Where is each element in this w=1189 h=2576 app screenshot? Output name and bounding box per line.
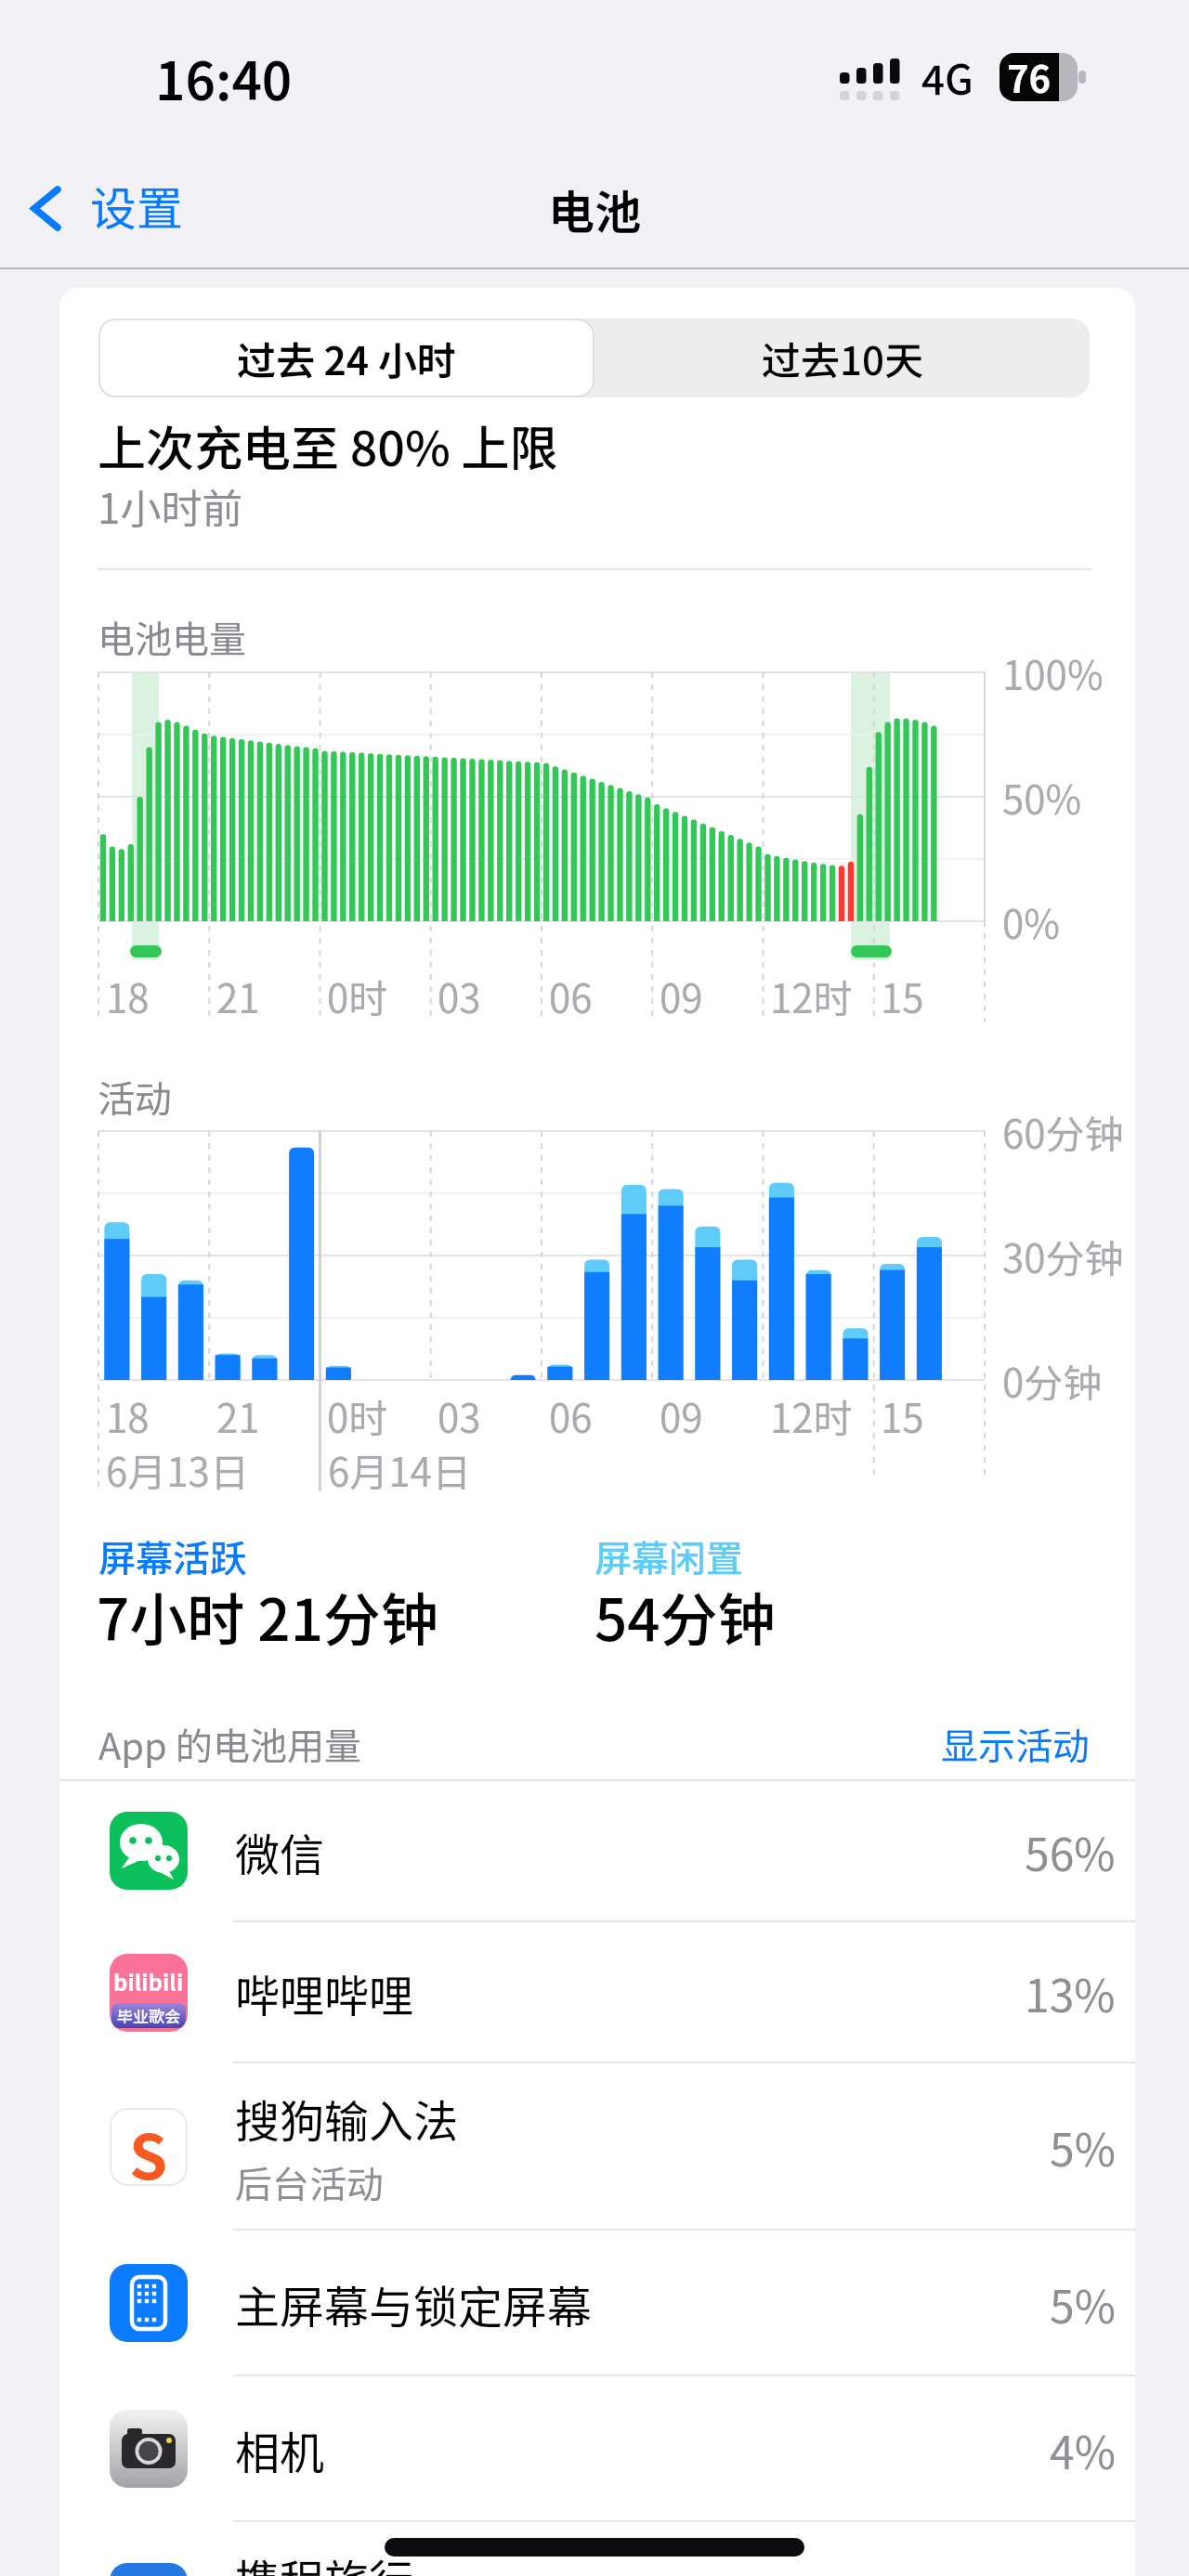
staticText: 13% (1025, 1960, 1116, 2025)
staticText: 03 (438, 1387, 481, 1444)
staticText: 搜狗输入法 (235, 2086, 459, 2149)
staticText: 0时 (327, 968, 388, 1024)
staticText: 4% (1050, 2417, 1116, 2482)
staticText: 携程旅行 (235, 2545, 414, 2576)
staticText: 76 (1007, 50, 1052, 104)
staticText: 过去10天 (762, 330, 923, 386)
button[interactable]: 过去 24 小时 (98, 319, 594, 397)
staticText: 16:40 (155, 40, 293, 115)
staticText: 100% (1002, 644, 1104, 701)
staticText: 06 (549, 1387, 593, 1444)
staticText: 12时 (770, 1387, 853, 1444)
staticText: S (129, 2108, 168, 2186)
staticText: 15 (881, 968, 924, 1024)
staticText: 设置 (90, 172, 183, 237)
staticText: 06 (549, 968, 593, 1024)
staticText: 上次充电至 80% 上限 (98, 410, 558, 480)
staticText: 03 (438, 968, 481, 1024)
staticText: App 的电池用量 (98, 1717, 361, 1771)
staticText: 0分钟 (1002, 1352, 1103, 1409)
button[interactable]: 主屏幕与锁定屏幕 (59, 2231, 1135, 2376)
staticText: 屏幕活跃 (98, 1529, 247, 1583)
staticText: 0% (1002, 893, 1060, 950)
staticText: 56% (1025, 1819, 1116, 1884)
staticText: 1小时前 (98, 476, 243, 536)
staticText: 屏幕闲置 (594, 1529, 743, 1583)
staticText: 18 (106, 1387, 150, 1444)
staticText: 毕业歌会 (117, 2004, 180, 2027)
staticText: 哔哩哔哩 (235, 1960, 414, 2025)
staticText: 30分钟 (1002, 1228, 1124, 1284)
staticText: 18 (106, 968, 150, 1024)
staticText: 12时 (770, 968, 853, 1024)
staticText: 显示活动 (941, 1717, 1090, 1771)
staticText: 5% (1050, 2271, 1116, 2336)
button[interactable]: 携程旅行 (59, 2522, 1135, 2576)
staticText: bilibili (113, 1965, 184, 1997)
staticText: 主屏幕与锁定屏幕 (235, 2271, 593, 2336)
staticText: 5% (1050, 2114, 1116, 2179)
staticText: 21 (216, 968, 260, 1024)
button[interactable]: bilibili (59, 1922, 1135, 2063)
button[interactable]: 微信 (59, 1780, 1135, 1922)
staticText: 7小时 21分钟 (97, 1574, 438, 1658)
button[interactable]: 相机 (59, 2376, 1135, 2522)
staticText: 电池 (548, 176, 641, 242)
staticText: 电池电量 (98, 610, 246, 664)
staticText: 09 (660, 1387, 703, 1444)
staticText: 微信 (235, 1819, 325, 1884)
staticText: 0时 (327, 1387, 388, 1444)
staticText: 54分钟 (594, 1574, 776, 1658)
staticText: 相机 (235, 2417, 325, 2482)
button[interactable]: S (59, 2063, 1135, 2231)
button[interactable]: 过去10天 (594, 319, 1090, 397)
staticText: 活动 (98, 1070, 172, 1124)
staticText: 过去 24 小时 (237, 330, 456, 386)
staticText: 15 (881, 1387, 924, 1444)
staticText: 4G (921, 47, 973, 107)
staticText: 21 (216, 1387, 260, 1444)
staticText: 6月14日 (328, 1441, 471, 1498)
staticText: 50% (1002, 769, 1082, 826)
staticText: 6月13日 (106, 1441, 249, 1498)
button[interactable]: 设置 (19, 176, 232, 241)
staticText: 09 (660, 968, 703, 1024)
button[interactable]: 显示活动 (811, 1714, 1090, 1774)
staticText: 60分钟 (1002, 1103, 1124, 1160)
staticText: 后台活动 (235, 2155, 384, 2209)
